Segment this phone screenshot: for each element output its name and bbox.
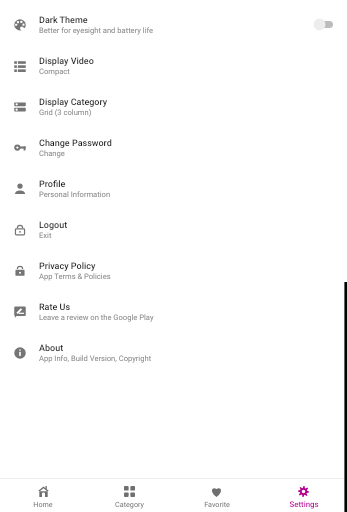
button[interactable]: Logout <box>0 209 347 250</box>
button[interactable]: Profile <box>0 168 347 209</box>
staticText: Profile <box>39 179 66 190</box>
staticText: App Info, Build Version, Copyright <box>39 354 152 363</box>
button[interactable]: Category <box>86 479 173 512</box>
button[interactable]: Display Category <box>0 86 347 127</box>
button[interactable]: About <box>0 332 347 373</box>
button[interactable]: Dark Theme <box>0 4 347 45</box>
staticText: Settings <box>289 500 319 509</box>
staticText: Display Video <box>39 56 94 67</box>
button[interactable]: Privacy Policy <box>0 250 347 291</box>
staticText: Exit <box>39 231 52 240</box>
button[interactable]: Favorite <box>173 479 260 512</box>
staticText: Personal Information <box>39 190 111 199</box>
staticText: Privacy Policy <box>39 261 96 272</box>
button[interactable]: Change Password <box>0 127 347 168</box>
staticText: Compact <box>39 67 70 76</box>
staticText: About <box>39 343 64 354</box>
staticText: Grid (3 column) <box>39 108 92 117</box>
staticText: Favorite <box>204 500 230 508</box>
button[interactable]: Rate Us <box>0 291 347 332</box>
button[interactable]: Settings <box>260 479 347 512</box>
staticText: Logout <box>39 220 68 231</box>
staticText: Rate Us <box>39 302 71 313</box>
staticText: App Terms & Policies <box>39 272 111 281</box>
button[interactable]: Display Video <box>0 45 347 86</box>
staticText: Category <box>115 500 144 508</box>
staticText: Better for eyesight and battery life <box>39 26 154 35</box>
staticText: Display Category <box>39 97 108 108</box>
button[interactable]: Home <box>0 479 86 512</box>
staticText: Leave a review on the Google Play <box>39 313 154 322</box>
staticText: Change <box>39 149 65 158</box>
button[interactable]: Dark theme switch <box>305 4 347 45</box>
staticText: Dark Theme <box>39 15 88 26</box>
staticText: Home <box>33 500 53 508</box>
staticText: Change Password <box>39 138 112 149</box>
